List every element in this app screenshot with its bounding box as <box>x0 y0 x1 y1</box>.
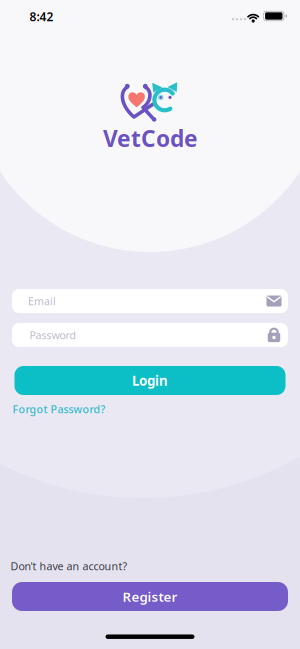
staticText: Password <box>29 328 76 342</box>
staticText: Email <box>28 294 56 308</box>
staticText: 8:42 <box>29 8 53 24</box>
button[interactable]: Login <box>14 366 285 395</box>
staticText: Register <box>122 588 177 605</box>
button[interactable]: Register <box>12 582 288 611</box>
staticText: Forgot Password? <box>12 402 105 416</box>
staticText: VetCode <box>103 123 198 153</box>
staticText: Login <box>132 372 168 389</box>
button[interactable]: Password <box>12 323 288 347</box>
button[interactable]: Forgot Password? <box>12 402 105 416</box>
staticText: Don't have an account? <box>10 559 127 573</box>
button[interactable]: Email <box>12 289 288 313</box>
